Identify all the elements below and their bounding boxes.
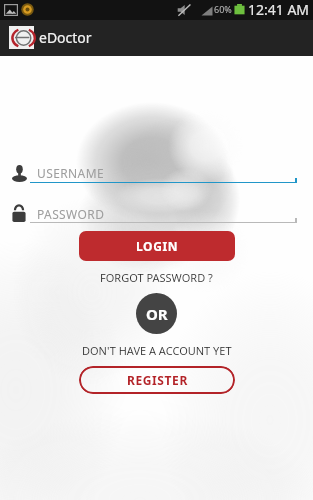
staticText: LOGIN [136, 238, 179, 254]
staticText: eDoctor [39, 28, 92, 47]
staticText: 12:41 AM [248, 0, 310, 19]
staticText: DON'T HAVE A ACCOUNT YET [82, 343, 232, 358]
staticText: USERNAME [37, 165, 105, 181]
staticText: PASSWORD [37, 206, 105, 222]
staticText: 60% [214, 3, 232, 15]
button[interactable]: REGISTER [79, 366, 235, 394]
button[interactable]: LOGIN [79, 231, 235, 261]
button[interactable]: FORGOT PASSWORD ? [94, 268, 219, 287]
staticText: FORGOT PASSWORD ? [100, 270, 213, 285]
staticText: OR [146, 304, 168, 324]
staticText: REGISTER [127, 372, 188, 388]
